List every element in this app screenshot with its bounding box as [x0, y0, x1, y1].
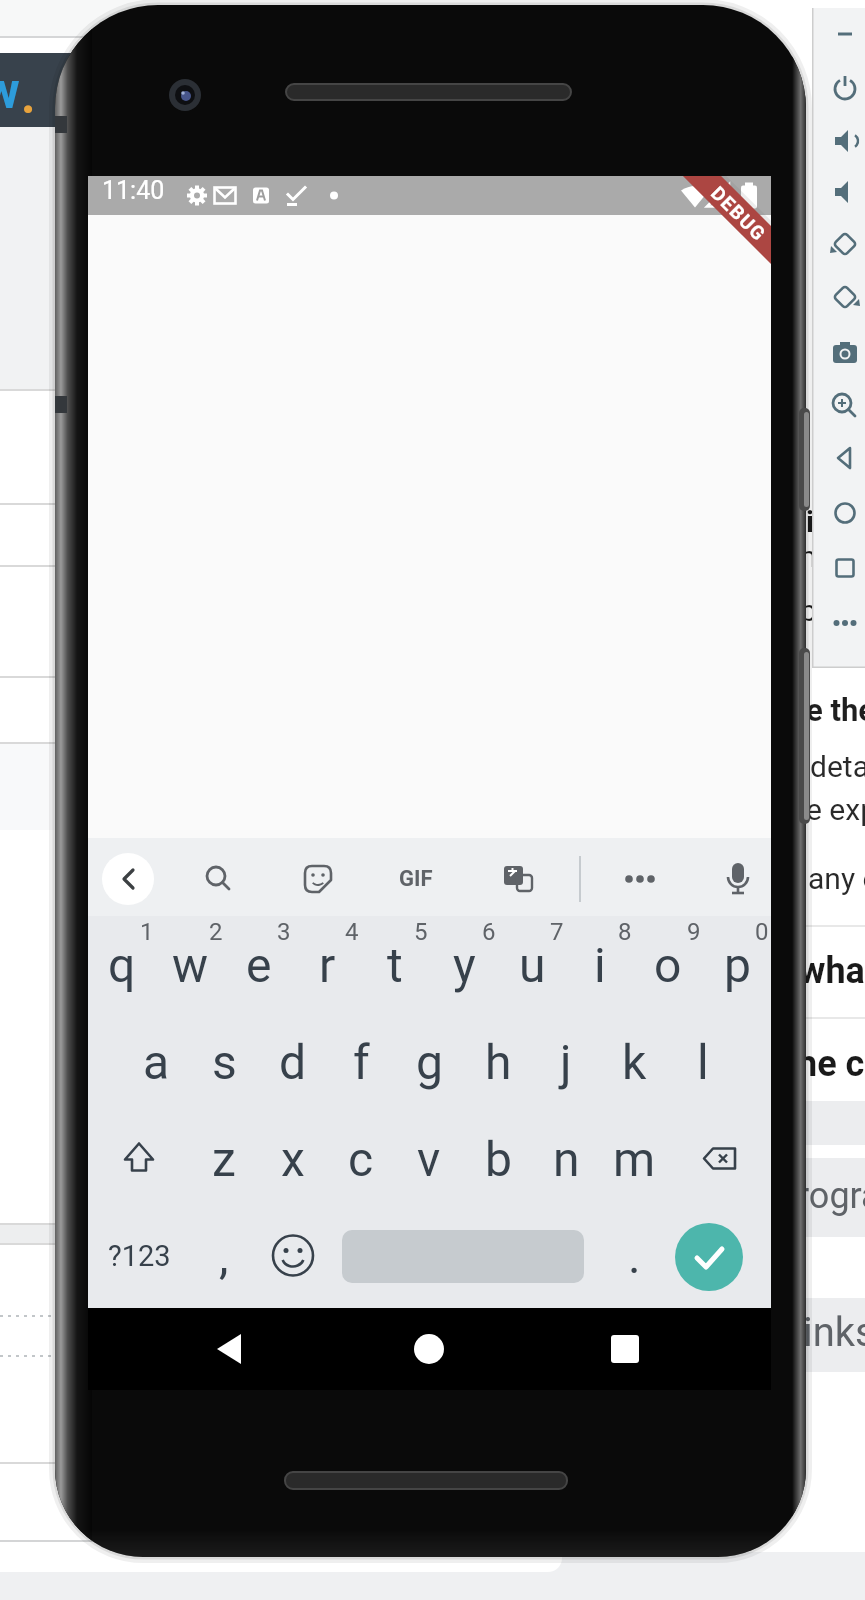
staticText: GIF: [399, 866, 433, 892]
button[interactable]: [712, 853, 764, 905]
button[interactable]: j: [532, 1013, 600, 1110]
button[interactable]: [825, 548, 865, 588]
button[interactable]: r: [293, 916, 361, 1013]
staticText: e exp: [806, 792, 865, 827]
staticText: b: [485, 1131, 512, 1187]
staticText: i: [806, 504, 814, 539]
button[interactable]: a: [122, 1013, 190, 1110]
button[interactable]: .: [600, 1207, 668, 1304]
button[interactable]: [292, 853, 344, 905]
staticText: any e: [808, 861, 865, 896]
staticText: y: [453, 937, 476, 993]
button[interactable]: g: [395, 1013, 463, 1110]
button[interactable]: [193, 853, 245, 905]
button[interactable]: [675, 1223, 743, 1291]
staticText: he cod: [797, 1043, 865, 1085]
button[interactable]: n: [532, 1110, 600, 1207]
button[interactable]: [409, 1329, 449, 1369]
button[interactable]: [825, 438, 865, 478]
staticText: rogra: [797, 1175, 865, 1217]
button[interactable]: [605, 1329, 645, 1369]
button[interactable]: [825, 334, 865, 374]
button[interactable]: v: [395, 1110, 463, 1207]
button[interactable]: w: [156, 916, 224, 1013]
button[interactable]: GIF: [385, 853, 447, 905]
staticText: d: [279, 1034, 307, 1090]
staticText: w: [0, 62, 20, 121]
button[interactable]: [825, 172, 865, 212]
staticText: 5: [414, 918, 428, 946]
button[interactable]: t: [361, 916, 429, 1013]
staticText: o: [654, 937, 682, 993]
staticText: m: [800, 539, 827, 574]
button[interactable]: [825, 69, 865, 109]
button[interactable]: f: [327, 1013, 395, 1110]
button[interactable]: [825, 277, 865, 317]
button[interactable]: o: [634, 916, 702, 1013]
button[interactable]: [825, 121, 865, 161]
button[interactable]: h: [464, 1013, 532, 1110]
button[interactable]: l: [669, 1013, 737, 1110]
button[interactable]: [102, 853, 154, 905]
button[interactable]: [825, 386, 865, 426]
button[interactable]: p: [703, 916, 771, 1013]
button[interactable]: i: [566, 916, 634, 1013]
button[interactable]: ?123: [88, 1207, 190, 1304]
staticText: 8: [618, 918, 632, 946]
staticText: w: [172, 937, 209, 993]
button[interactable]: [825, 224, 865, 264]
staticText: detail: [810, 749, 865, 784]
staticText: g: [416, 1034, 443, 1090]
button[interactable]: [492, 853, 544, 905]
button[interactable]: b: [464, 1110, 532, 1207]
staticText: f: [353, 1034, 370, 1090]
staticText: DEBUG: [707, 182, 771, 246]
button[interactable]: m: [600, 1110, 668, 1207]
button[interactable]: [825, 14, 865, 54]
staticText: ,: [219, 1228, 229, 1284]
staticText: 9: [687, 918, 701, 946]
button[interactable]: u: [498, 916, 566, 1013]
button[interactable]: k: [600, 1013, 668, 1110]
staticText: p: [724, 937, 751, 993]
button[interactable]: e: [225, 916, 293, 1013]
staticText: c: [348, 1131, 374, 1187]
staticText: .: [21, 67, 36, 126]
staticText: n: [553, 1131, 580, 1187]
button[interactable]: ,: [190, 1207, 258, 1304]
staticText: q: [108, 937, 136, 993]
button[interactable]: x: [259, 1110, 327, 1207]
button[interactable]: [669, 1110, 771, 1207]
staticText: k: [622, 1034, 647, 1090]
staticText: 3: [277, 918, 291, 946]
button[interactable]: [259, 1207, 327, 1304]
button[interactable]: q: [88, 916, 156, 1013]
staticText: i: [594, 937, 606, 993]
button[interactable]: [614, 853, 666, 905]
staticText: 11:40: [102, 176, 165, 205]
button[interactable]: [88, 1110, 190, 1207]
button[interactable]: [210, 1329, 250, 1369]
staticText: t: [387, 937, 403, 993]
staticText: 6: [482, 918, 496, 946]
staticText: a: [143, 1034, 170, 1090]
button[interactable]: y: [430, 916, 498, 1013]
staticText: 1: [140, 918, 154, 946]
button[interactable]: c: [327, 1110, 395, 1207]
staticText: 2: [209, 918, 223, 946]
button[interactable]: s: [190, 1013, 258, 1110]
staticText: 0: [755, 918, 769, 946]
button[interactable]: d: [259, 1013, 327, 1110]
staticText: ?123: [108, 1239, 171, 1273]
button[interactable]: z: [190, 1110, 258, 1207]
staticText: pi: [800, 593, 825, 628]
staticText: 4: [345, 918, 359, 946]
staticText: e the: [806, 692, 865, 728]
staticText: what: [799, 950, 865, 992]
staticText: .: [628, 1228, 641, 1284]
button[interactable]: [825, 603, 865, 643]
staticText: 7: [550, 918, 564, 946]
staticText: m: [613, 1131, 656, 1187]
button[interactable]: [825, 493, 865, 533]
